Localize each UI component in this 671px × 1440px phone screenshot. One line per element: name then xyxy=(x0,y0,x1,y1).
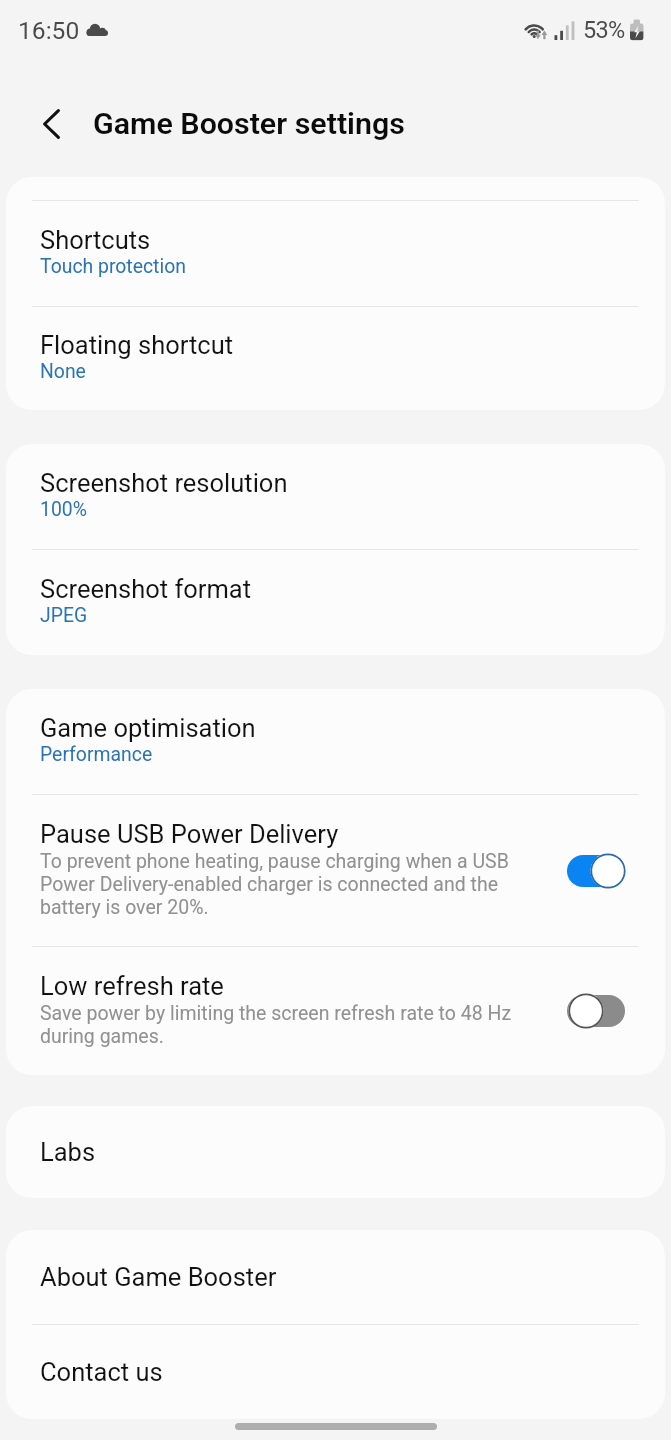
button[interactable]: Switch on xyxy=(567,853,627,889)
staticText: Low refresh rate xyxy=(40,971,224,1001)
staticText: Contact us xyxy=(40,1357,163,1387)
staticText: Shortcuts xyxy=(40,225,151,255)
button[interactable]: Game optimisation xyxy=(6,689,665,794)
staticText: Touch protection xyxy=(40,255,186,278)
button[interactable]: Screenshot format xyxy=(6,550,665,655)
staticText: Screenshot format xyxy=(40,574,252,604)
staticText: Save power by limiting the screen refres… xyxy=(40,1002,520,1048)
staticText: Floating shortcut xyxy=(40,330,234,360)
staticText: 16:50 xyxy=(18,16,80,45)
staticText: Screenshot resolution xyxy=(40,468,288,498)
staticText: None xyxy=(40,360,86,383)
staticText: About Game Booster xyxy=(40,1262,277,1292)
button[interactable]: Low refresh rate xyxy=(6,947,665,1075)
button[interactable]: Switch off xyxy=(567,993,627,1029)
staticText: Performance xyxy=(40,743,153,766)
button[interactable]: Floating shortcut xyxy=(6,307,665,410)
staticText: Labs xyxy=(40,1137,96,1167)
button[interactable]: Shortcuts xyxy=(6,201,665,306)
staticText: Game Booster settings xyxy=(93,106,405,142)
button[interactable]: Screenshot resolution xyxy=(6,444,665,549)
button[interactable]: Labs xyxy=(6,1106,665,1198)
button[interactable]: Navigate up xyxy=(32,105,70,143)
button[interactable]: Pause USB Power Delivery xyxy=(6,795,665,946)
staticText: 100% xyxy=(40,498,87,521)
staticText: Pause USB Power Delivery xyxy=(40,819,339,849)
staticText: To prevent phone heating, pause charging… xyxy=(40,850,520,919)
staticText: 53% xyxy=(583,16,625,44)
button[interactable]: Contact us xyxy=(6,1325,665,1419)
staticText: JPEG xyxy=(40,604,88,627)
button[interactable]: About Game Booster xyxy=(6,1230,665,1324)
staticText: Game optimisation xyxy=(40,713,256,743)
